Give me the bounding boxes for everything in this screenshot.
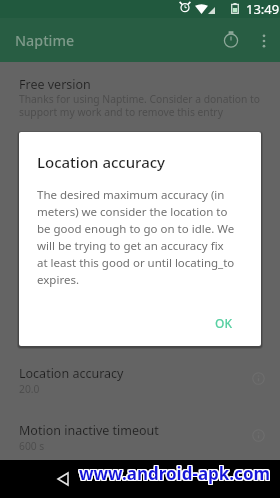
staticText: www.android-apk.com bbox=[78, 463, 270, 486]
staticText: Thanks for using Naptime. Consider a don… bbox=[19, 92, 261, 119]
button[interactable]: Location accuracy bbox=[0, 359, 280, 407]
staticText: Naptime bbox=[15, 31, 75, 50]
button[interactable]: More options bbox=[250, 27, 278, 55]
staticText: Location accuracy bbox=[19, 365, 124, 382]
staticText: www.android-apk.com bbox=[80, 462, 272, 485]
button[interactable]: Back bbox=[51, 467, 75, 491]
staticText: Motion inactive timeout bbox=[19, 422, 159, 439]
staticText: www.android-apk.com bbox=[79, 463, 271, 486]
button[interactable]: Free version bbox=[0, 70, 280, 124]
staticText: www.android-apk.com bbox=[80, 463, 272, 486]
staticText: www.android-apk.com bbox=[78, 461, 270, 484]
staticText: www.android-apk.com bbox=[79, 462, 271, 485]
staticText: 13:49 bbox=[246, 0, 280, 18]
staticText: The desired maximum accuracy (in meters)… bbox=[37, 187, 237, 288]
button[interactable]: Motion inactive timeout bbox=[0, 416, 280, 464]
button[interactable]: OK bbox=[207, 310, 240, 336]
staticText: 20.0 bbox=[19, 382, 40, 396]
staticText: OK bbox=[215, 315, 232, 331]
staticText: www.android-apk.com bbox=[80, 461, 272, 484]
button[interactable]: Timer bbox=[212, 20, 250, 58]
staticText: Location accuracy bbox=[37, 152, 166, 172]
staticText: www.android-apk.com bbox=[79, 461, 271, 484]
staticText: 600 s bbox=[19, 439, 45, 453]
staticText: Free version bbox=[19, 76, 91, 93]
staticText: www.android-apk.com bbox=[78, 462, 270, 485]
